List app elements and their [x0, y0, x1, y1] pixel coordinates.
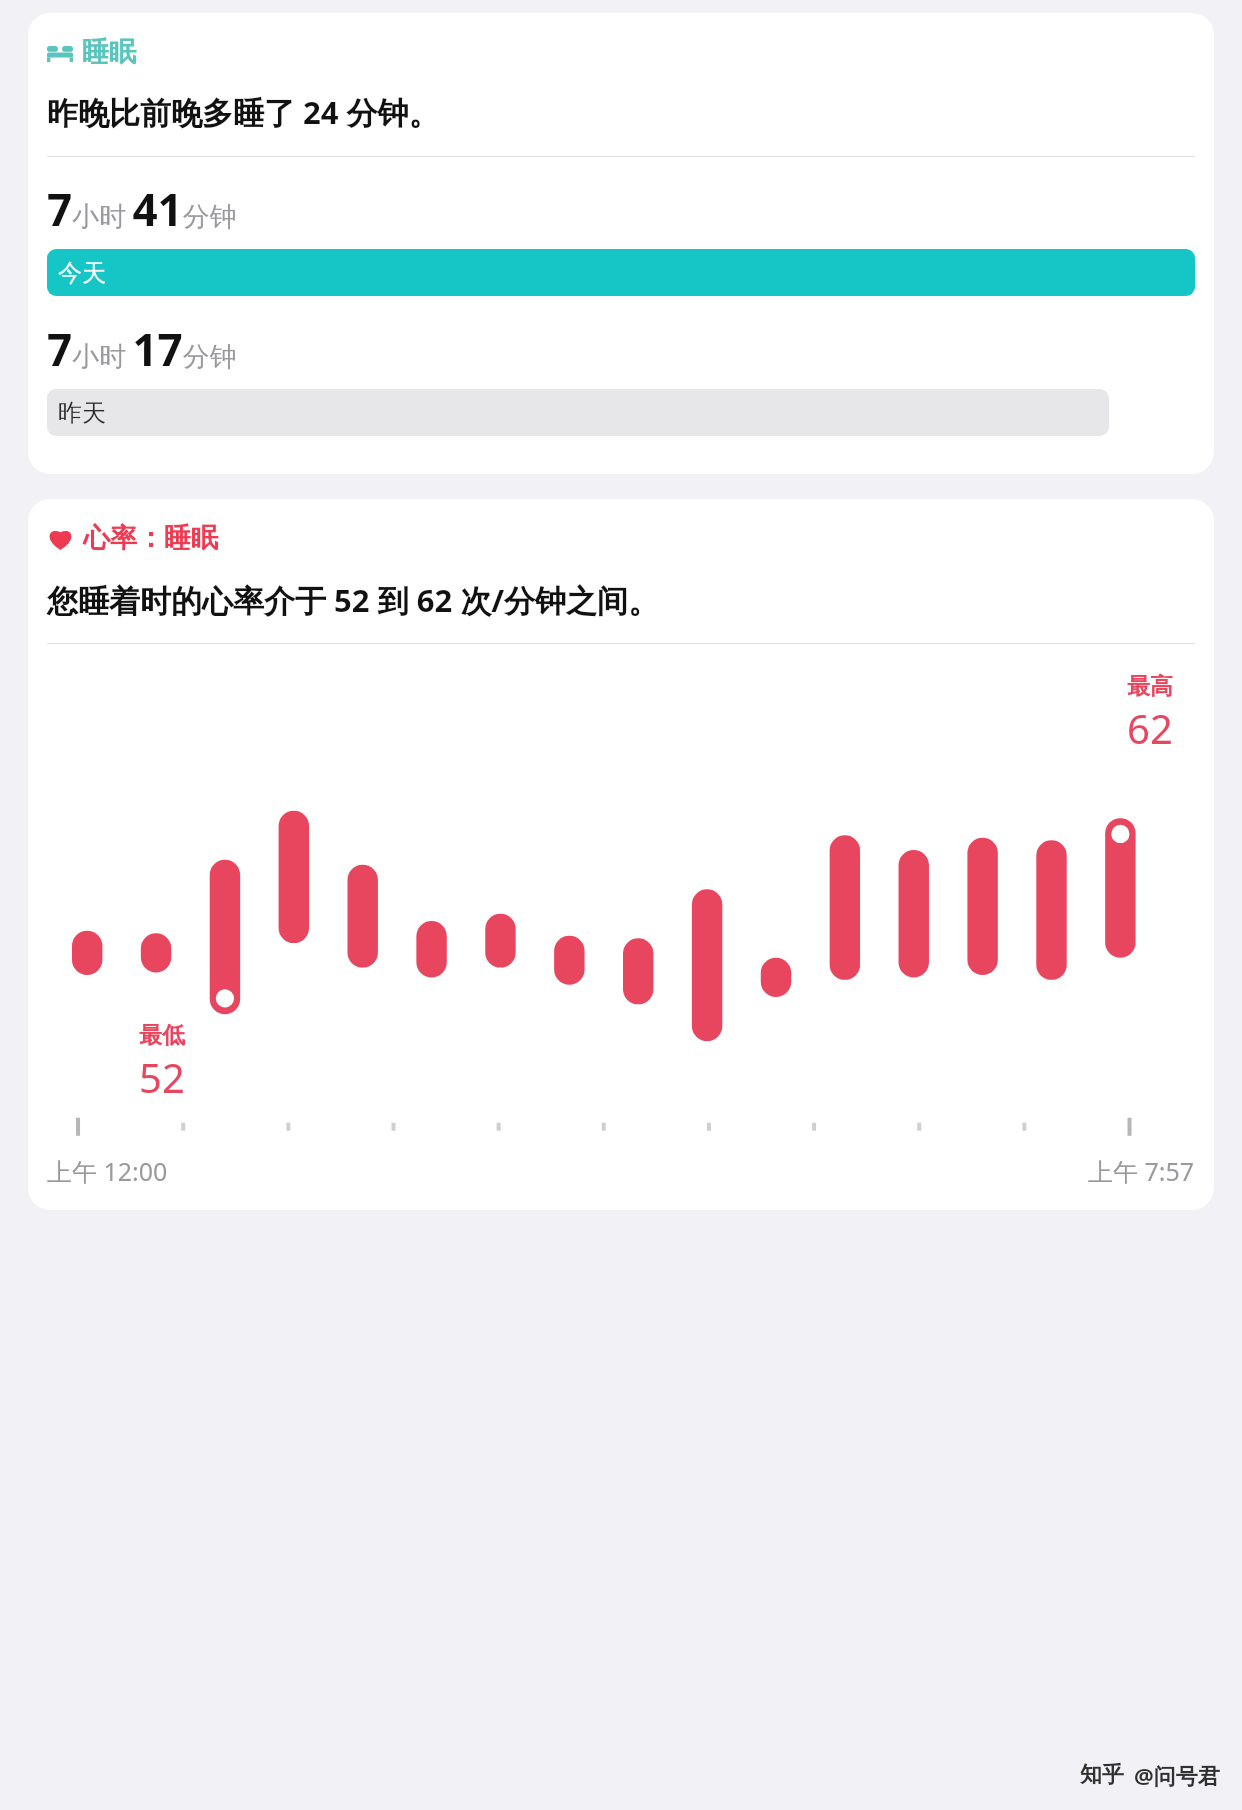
staticText: 睡眠 — [82, 35, 136, 69]
staticText: 62 — [1127, 701, 1173, 755]
staticText: 上午 7:57 — [1088, 1154, 1195, 1188]
button[interactable]: 昨天 — [47, 389, 1109, 436]
staticText: 7小时 41分钟 — [47, 179, 237, 239]
staticText: @问号君 — [1134, 1760, 1220, 1790]
staticText: 最高 — [1127, 672, 1173, 701]
staticText: 知乎 — [1080, 1761, 1124, 1789]
staticText: 心率：睡眠 — [83, 521, 218, 555]
button[interactable]: 今天 — [47, 249, 1195, 296]
staticText: 上午 12:00 — [47, 1154, 168, 1188]
other: Sleep — [47, 43, 73, 62]
other: Heart rate — [47, 525, 74, 552]
staticText: 最低 — [139, 1021, 185, 1050]
staticText: 7小时 17分钟 — [47, 319, 237, 379]
staticText: 今天 — [58, 258, 106, 288]
staticText: 昨晚比前晚多睡了 24 分钟。 — [47, 91, 440, 133]
button[interactable]: Heart rate — [28, 499, 1214, 1210]
staticText: 昨天 — [58, 398, 106, 428]
staticText: 您睡着时的心率介于 52 到 62 次/分钟之间。 — [47, 579, 660, 621]
button[interactable]: Sleep — [28, 13, 1214, 474]
staticText: 52 — [139, 1050, 185, 1104]
